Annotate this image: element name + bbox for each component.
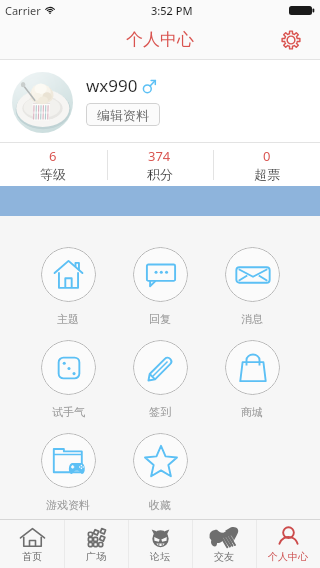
button[interactable]: 商城 [206,340,298,419]
button[interactable]: 6 [0,143,106,186]
staticText: 游戏资料 [46,498,90,512]
staticText: 3:52 PM [151,3,193,18]
staticText: 积分 [147,166,173,182]
button[interactable]: 主题 [22,247,114,326]
staticText: 商城 [241,405,263,419]
staticText: 收藏 [149,498,171,512]
staticText: 超票 [254,166,280,182]
staticText: 首页 [22,550,42,563]
staticText: 主题 [57,312,79,326]
staticText: 374 [148,147,171,165]
staticText: 6 [49,147,57,165]
button[interactable]: 游戏资料 [22,433,114,512]
staticText: 回复 [149,312,171,326]
button[interactable]: Settings [278,27,304,53]
staticText: 消息 [241,312,263,326]
button[interactable]: 试手气 [22,340,114,419]
button[interactable]: 广场 [64,520,128,568]
staticText: 编辑资料 [97,107,149,123]
staticText: 签到 [149,405,171,419]
staticText: Carrier [5,3,41,18]
button[interactable]: 消息 [206,247,298,326]
staticText: 0 [263,147,271,165]
button[interactable]: 首页 [0,520,64,568]
staticText: 等级 [40,166,66,182]
button[interactable]: 收藏 [114,433,206,512]
staticText: 广场 [86,550,106,563]
button[interactable]: 编辑资料 [86,103,160,126]
staticText: 论坛 [150,550,170,563]
staticText: 个人中心 [126,29,194,50]
staticText: 个人中心 [268,550,308,563]
button[interactable]: 个人中心 [256,520,320,568]
button[interactable]: 交友 [192,520,256,568]
button[interactable]: 论坛 [128,520,192,568]
staticText: wx990 [86,74,138,97]
button[interactable]: 0 [213,143,320,186]
button[interactable]: 374 [106,143,213,186]
button[interactable]: Avatar [12,72,73,133]
button[interactable]: 回复 [114,247,206,326]
button[interactable]: 签到 [114,340,206,419]
staticText: 交友 [214,550,234,563]
staticText: 试手气 [52,405,85,419]
